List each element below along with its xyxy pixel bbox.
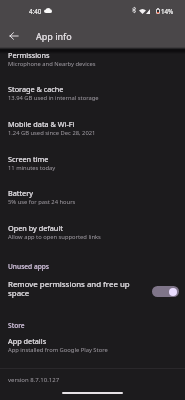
button[interactable]: Back xyxy=(6,28,22,44)
staticText: 4:40 xyxy=(29,7,42,15)
staticText: 1.24 GB used since Dec 28, 2021 xyxy=(8,129,96,137)
staticText: Mobile data & Wi-Fi xyxy=(8,119,75,129)
staticText: 11 minutes today xyxy=(8,164,56,172)
button[interactable]: Remove permissions toggle xyxy=(152,286,179,297)
staticText: Open by default xyxy=(8,223,63,233)
button[interactable]: Remove permissions and free up xyxy=(0,278,185,304)
staticText: Remove permissions and free up xyxy=(8,279,130,290)
button[interactable]: App details xyxy=(0,335,185,369)
staticText: Store xyxy=(8,321,25,330)
staticText: App info xyxy=(36,30,72,42)
button[interactable]: Open by default xyxy=(0,222,185,256)
button[interactable]: Battery xyxy=(0,187,185,221)
staticText: version 8.7.10.127 xyxy=(8,376,60,384)
staticText: Unused apps xyxy=(8,262,50,271)
staticText: App details xyxy=(8,336,47,346)
staticText: Storage & cache xyxy=(8,84,64,94)
button[interactable]: Mobile data & Wi-Fi xyxy=(0,118,185,152)
button[interactable]: Permissions xyxy=(0,49,185,83)
staticText: Allow app to open supported links xyxy=(8,233,101,241)
staticText: 5% use for past 24 hours xyxy=(8,198,76,206)
button[interactable]: Storage & cache xyxy=(0,83,185,117)
staticText: Permissions xyxy=(8,50,50,60)
staticText: 13.94 GB used in internal storage xyxy=(8,94,99,102)
staticText: space xyxy=(8,288,30,299)
staticText: Microphone and Nearby devices xyxy=(8,60,96,68)
staticText: App installed from Google Play Store xyxy=(8,346,108,354)
button[interactable]: Screen time xyxy=(0,153,185,187)
staticText: Battery xyxy=(8,188,33,198)
staticText: 14% xyxy=(161,7,174,15)
staticText: Screen time xyxy=(8,154,49,164)
